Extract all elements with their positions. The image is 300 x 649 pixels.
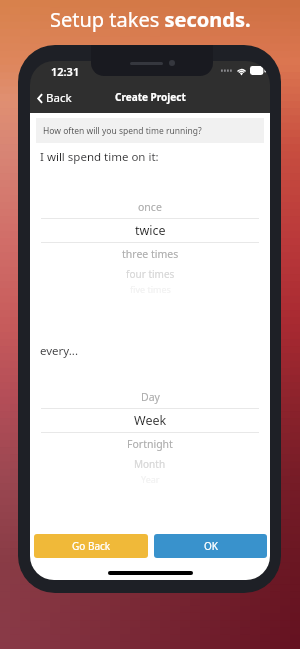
button[interactable]: Week bbox=[30, 409, 270, 432]
staticText: once bbox=[138, 200, 162, 214]
button[interactable]: four times bbox=[30, 265, 270, 283]
staticText: four times bbox=[126, 267, 175, 281]
staticText: Year bbox=[141, 473, 160, 485]
button[interactable]: once bbox=[30, 196, 270, 218]
button[interactable]: Back bbox=[33, 86, 76, 110]
staticText: Back bbox=[46, 90, 72, 106]
button[interactable]: Fortnight bbox=[30, 433, 270, 455]
staticText: OK bbox=[204, 539, 218, 553]
staticText: Month bbox=[134, 457, 166, 471]
staticText: Setup takes seconds. bbox=[50, 6, 251, 33]
staticText: Create Project bbox=[115, 90, 186, 104]
button[interactable]: Day bbox=[30, 386, 270, 408]
button[interactable]: twice bbox=[30, 219, 270, 242]
staticText: three times bbox=[122, 247, 179, 261]
staticText: Day bbox=[141, 390, 160, 404]
button[interactable]: Month bbox=[30, 455, 270, 473]
staticText: twice bbox=[135, 222, 166, 239]
button[interactable]: Go Back bbox=[34, 534, 148, 558]
staticText: Go Back bbox=[72, 539, 111, 553]
staticText: 12:31 bbox=[51, 64, 80, 79]
staticText: five times bbox=[130, 283, 171, 295]
staticText: Week bbox=[134, 412, 167, 429]
staticText: How often will you spend time running? bbox=[43, 125, 202, 137]
staticText: Fortnight bbox=[127, 437, 173, 451]
staticText: every... bbox=[40, 343, 78, 359]
staticText: I will spend time on it: bbox=[40, 149, 159, 165]
button[interactable]: three times bbox=[30, 243, 270, 265]
button[interactable]: OK bbox=[154, 534, 267, 558]
